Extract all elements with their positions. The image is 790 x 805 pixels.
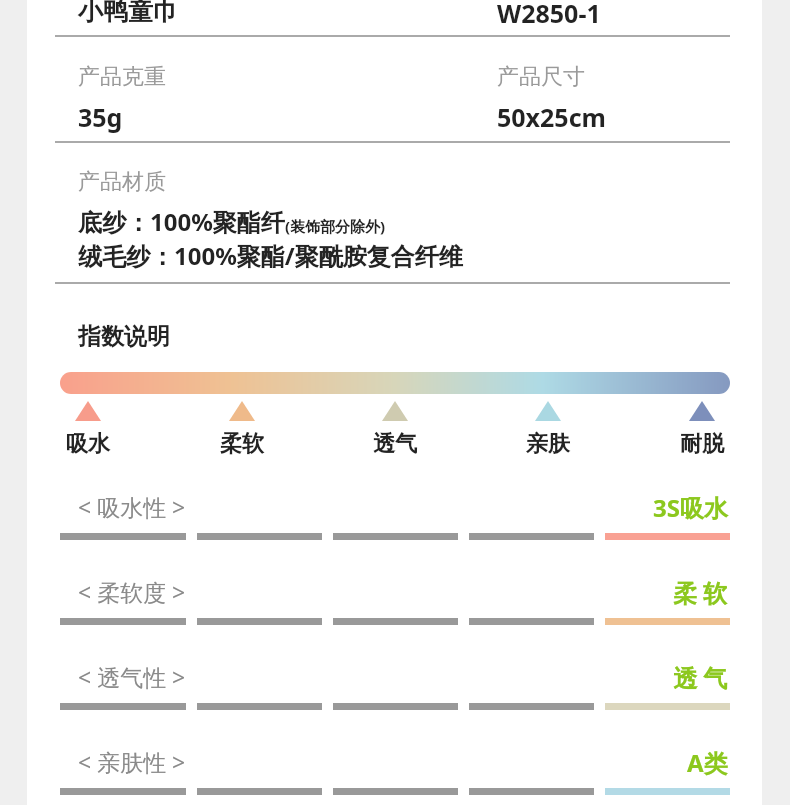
- staticText: W2850-1: [497, 0, 601, 30]
- staticText: 50x25cm: [497, 100, 606, 134]
- button[interactable]: < 吸水性 >: [60, 487, 730, 539]
- staticText: 透气: [373, 430, 417, 458]
- staticText: < 柔软度 >: [78, 576, 186, 607]
- staticText: < 亲肤性 >: [78, 746, 186, 777]
- button[interactable]: < 柔软度 >: [60, 572, 730, 624]
- staticText: 亲肤: [526, 430, 570, 458]
- staticText: 小鸭童巾: [78, 0, 178, 27]
- staticText: 产品尺寸: [497, 63, 585, 91]
- staticText: (装饰部分除外): [285, 216, 386, 236]
- button[interactable]: < 透气性 >: [60, 657, 730, 709]
- staticText: 产品克重: [78, 63, 166, 91]
- staticText: 吸水: [66, 430, 110, 458]
- staticText: 透 气: [673, 661, 728, 694]
- staticText: 35g: [78, 100, 123, 134]
- staticText: 耐脱: [680, 430, 724, 458]
- staticText: 3S吸水: [653, 491, 728, 524]
- staticText: < 吸水性 >: [78, 491, 186, 522]
- staticText: 底纱：100%聚酯纤: [78, 205, 285, 238]
- staticText: A类: [687, 746, 728, 779]
- staticText: 指数说明: [78, 322, 170, 351]
- staticText: 产品材质: [78, 168, 166, 196]
- button[interactable]: < 亲肤性 >: [60, 742, 730, 794]
- staticText: 柔 软: [673, 576, 728, 609]
- staticText: 柔软: [220, 430, 264, 458]
- staticText: 绒毛纱：100%聚酯/聚酰胺复合纤维: [78, 239, 463, 272]
- staticText: < 透气性 >: [78, 661, 186, 692]
